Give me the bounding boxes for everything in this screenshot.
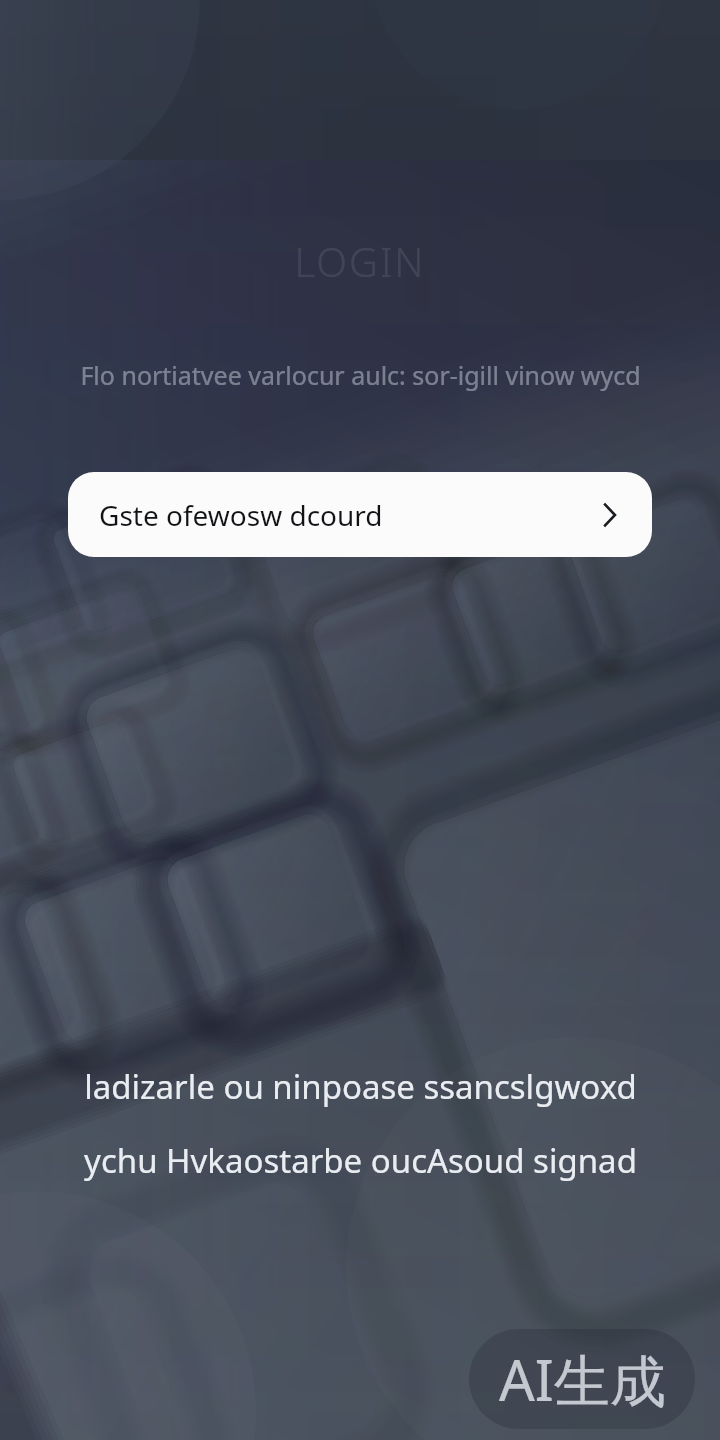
staticText: ychu Hvkaostarbe oucAsoud signad bbox=[84, 1138, 637, 1183]
staticText: AI生成 bbox=[499, 1341, 666, 1417]
staticText: Gste ofewosw dcourd bbox=[99, 496, 383, 534]
staticText: Flo nortiatvee varlocur aulc: sor-igill … bbox=[80, 358, 641, 392]
other: Open bbox=[594, 500, 624, 530]
staticText: ladizarle ou ninpoase ssancslgwoxd bbox=[84, 1064, 637, 1109]
staticText: LOGIN bbox=[294, 234, 426, 288]
button[interactable]: Gste ofewosw dcourd bbox=[68, 472, 652, 557]
